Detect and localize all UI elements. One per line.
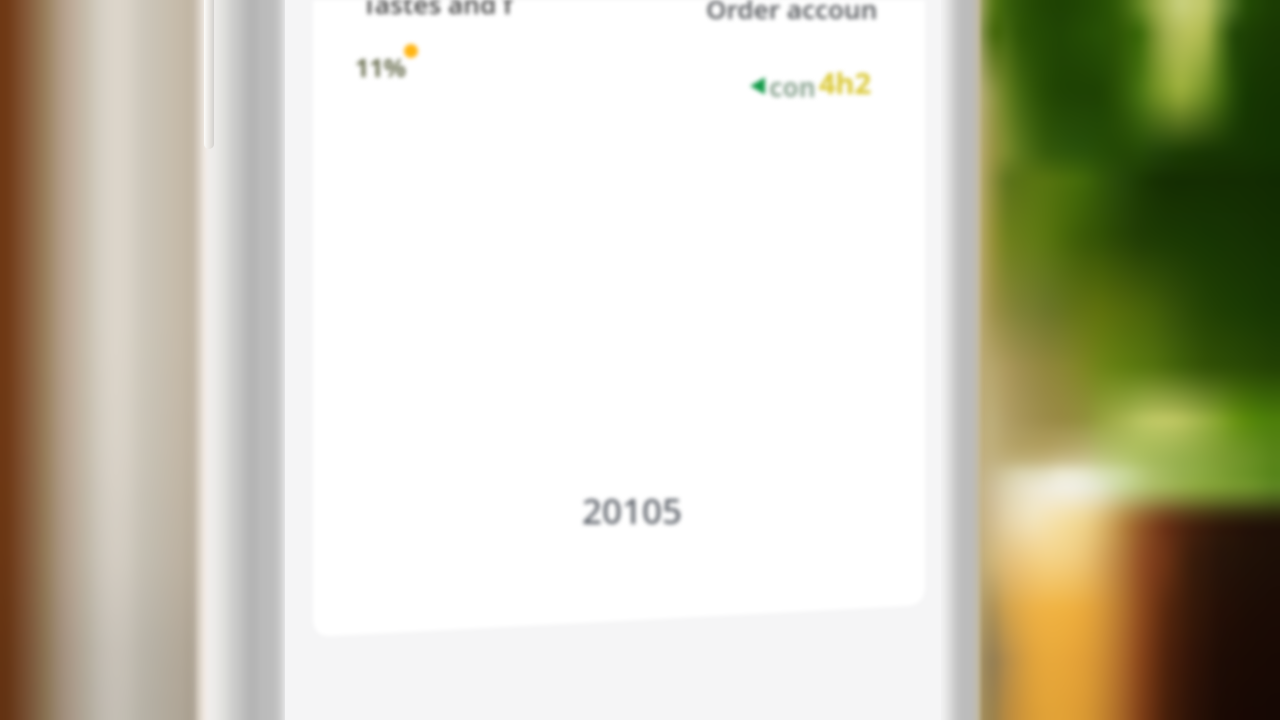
button[interactable]: Order accoun — [706, 0, 878, 26]
button[interactable]: Back — [750, 76, 765, 95]
button[interactable]: 20105 — [582, 487, 683, 535]
button[interactable]: 4h2 — [819, 63, 872, 102]
button[interactable]: con — [769, 69, 816, 104]
button[interactable]: Tastes and f — [362, 0, 513, 21]
button[interactable]: 11% — [355, 50, 407, 84]
button[interactable]: Side button — [204, 0, 214, 149]
